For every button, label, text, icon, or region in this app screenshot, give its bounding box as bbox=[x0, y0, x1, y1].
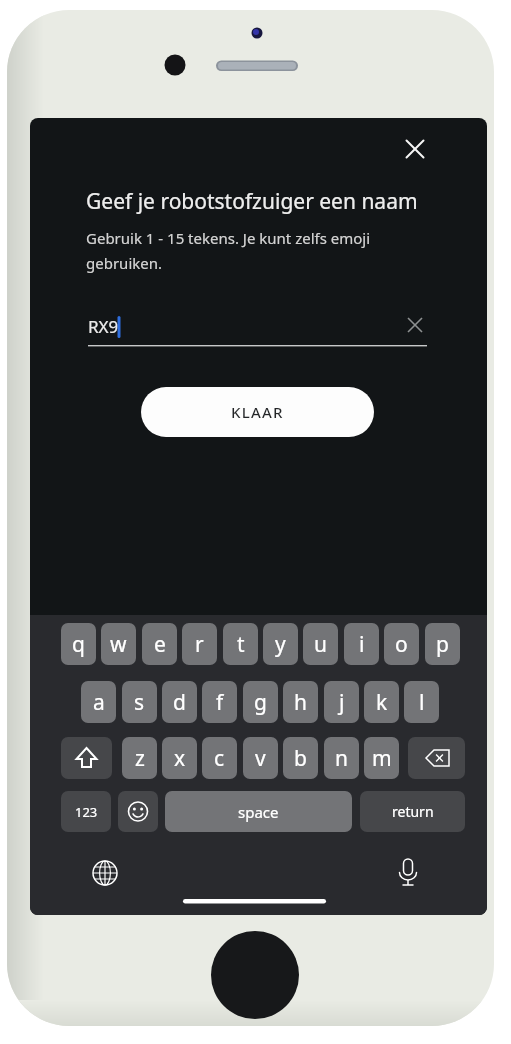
button[interactable]: x bbox=[162, 737, 197, 779]
button[interactable]: i bbox=[344, 623, 379, 665]
staticText: w bbox=[110, 630, 127, 659]
staticText: j bbox=[339, 688, 345, 717]
button[interactable]: v bbox=[243, 737, 278, 779]
button[interactable]: g bbox=[243, 681, 278, 723]
staticText: f bbox=[216, 688, 224, 717]
staticText: v bbox=[255, 744, 266, 773]
staticText: q bbox=[72, 630, 85, 659]
staticText: l bbox=[419, 688, 425, 717]
button[interactable]: h bbox=[283, 681, 318, 723]
staticText: k bbox=[376, 688, 388, 717]
staticText: c bbox=[214, 744, 225, 773]
button[interactable]: r bbox=[182, 623, 217, 665]
staticText: d bbox=[173, 688, 186, 717]
staticText: n bbox=[335, 744, 348, 773]
button[interactable]: k bbox=[364, 681, 399, 723]
staticText: r bbox=[195, 630, 204, 659]
staticText: return bbox=[392, 802, 434, 821]
staticText: Gebruik 1 - 15 tekens. Je kunt zelfs emo… bbox=[86, 228, 371, 273]
staticText: RX9 bbox=[88, 315, 119, 338]
button[interactable]: j bbox=[324, 681, 359, 723]
button[interactable]: c bbox=[202, 737, 237, 779]
button[interactable] bbox=[397, 131, 433, 167]
button[interactable]: o bbox=[384, 623, 419, 665]
button[interactable]: y bbox=[263, 623, 298, 665]
button[interactable]: w bbox=[101, 623, 136, 665]
button[interactable]: space bbox=[165, 791, 352, 832]
staticText: b bbox=[294, 744, 307, 773]
button[interactable] bbox=[408, 737, 465, 779]
button[interactable]: l bbox=[404, 681, 439, 723]
staticText: e bbox=[154, 630, 166, 659]
button[interactable] bbox=[118, 791, 158, 832]
button[interactable]: KLAAR bbox=[141, 387, 374, 437]
button[interactable]: s bbox=[122, 681, 157, 723]
button[interactable]: d bbox=[162, 681, 197, 723]
button[interactable]: a bbox=[81, 681, 116, 723]
staticText: u bbox=[314, 630, 327, 659]
button[interactable]: n bbox=[324, 737, 359, 779]
button[interactable]: return bbox=[360, 791, 465, 832]
button[interactable]: p bbox=[425, 623, 460, 665]
staticText: i bbox=[359, 630, 365, 659]
staticText: p bbox=[436, 630, 449, 659]
staticText: h bbox=[294, 688, 307, 717]
button[interactable]: 123 bbox=[61, 791, 111, 832]
staticText: y bbox=[275, 630, 286, 659]
button[interactable] bbox=[87, 855, 123, 891]
button[interactable]: z bbox=[122, 737, 157, 779]
staticText: Geef je robotstofzuiger een naam bbox=[86, 187, 418, 216]
button[interactable]: u bbox=[303, 623, 338, 665]
staticText: t bbox=[237, 630, 245, 659]
staticText: space bbox=[238, 802, 279, 822]
button[interactable]: q bbox=[61, 623, 96, 665]
button[interactable] bbox=[399, 309, 431, 341]
staticText: m bbox=[372, 744, 392, 773]
button[interactable]: m bbox=[364, 737, 399, 779]
staticText: z bbox=[135, 744, 145, 773]
staticText: o bbox=[395, 630, 408, 659]
button[interactable] bbox=[390, 853, 426, 889]
staticText: x bbox=[174, 744, 186, 773]
button[interactable]: t bbox=[223, 623, 258, 665]
staticText: a bbox=[93, 688, 105, 717]
staticText: KLAAR bbox=[231, 402, 284, 422]
button[interactable]: f bbox=[202, 681, 237, 723]
staticText: g bbox=[254, 688, 267, 717]
button[interactable] bbox=[61, 737, 112, 779]
staticText: 123 bbox=[75, 803, 98, 821]
staticText: s bbox=[134, 688, 145, 717]
button[interactable]: e bbox=[142, 623, 177, 665]
button[interactable]: b bbox=[283, 737, 318, 779]
